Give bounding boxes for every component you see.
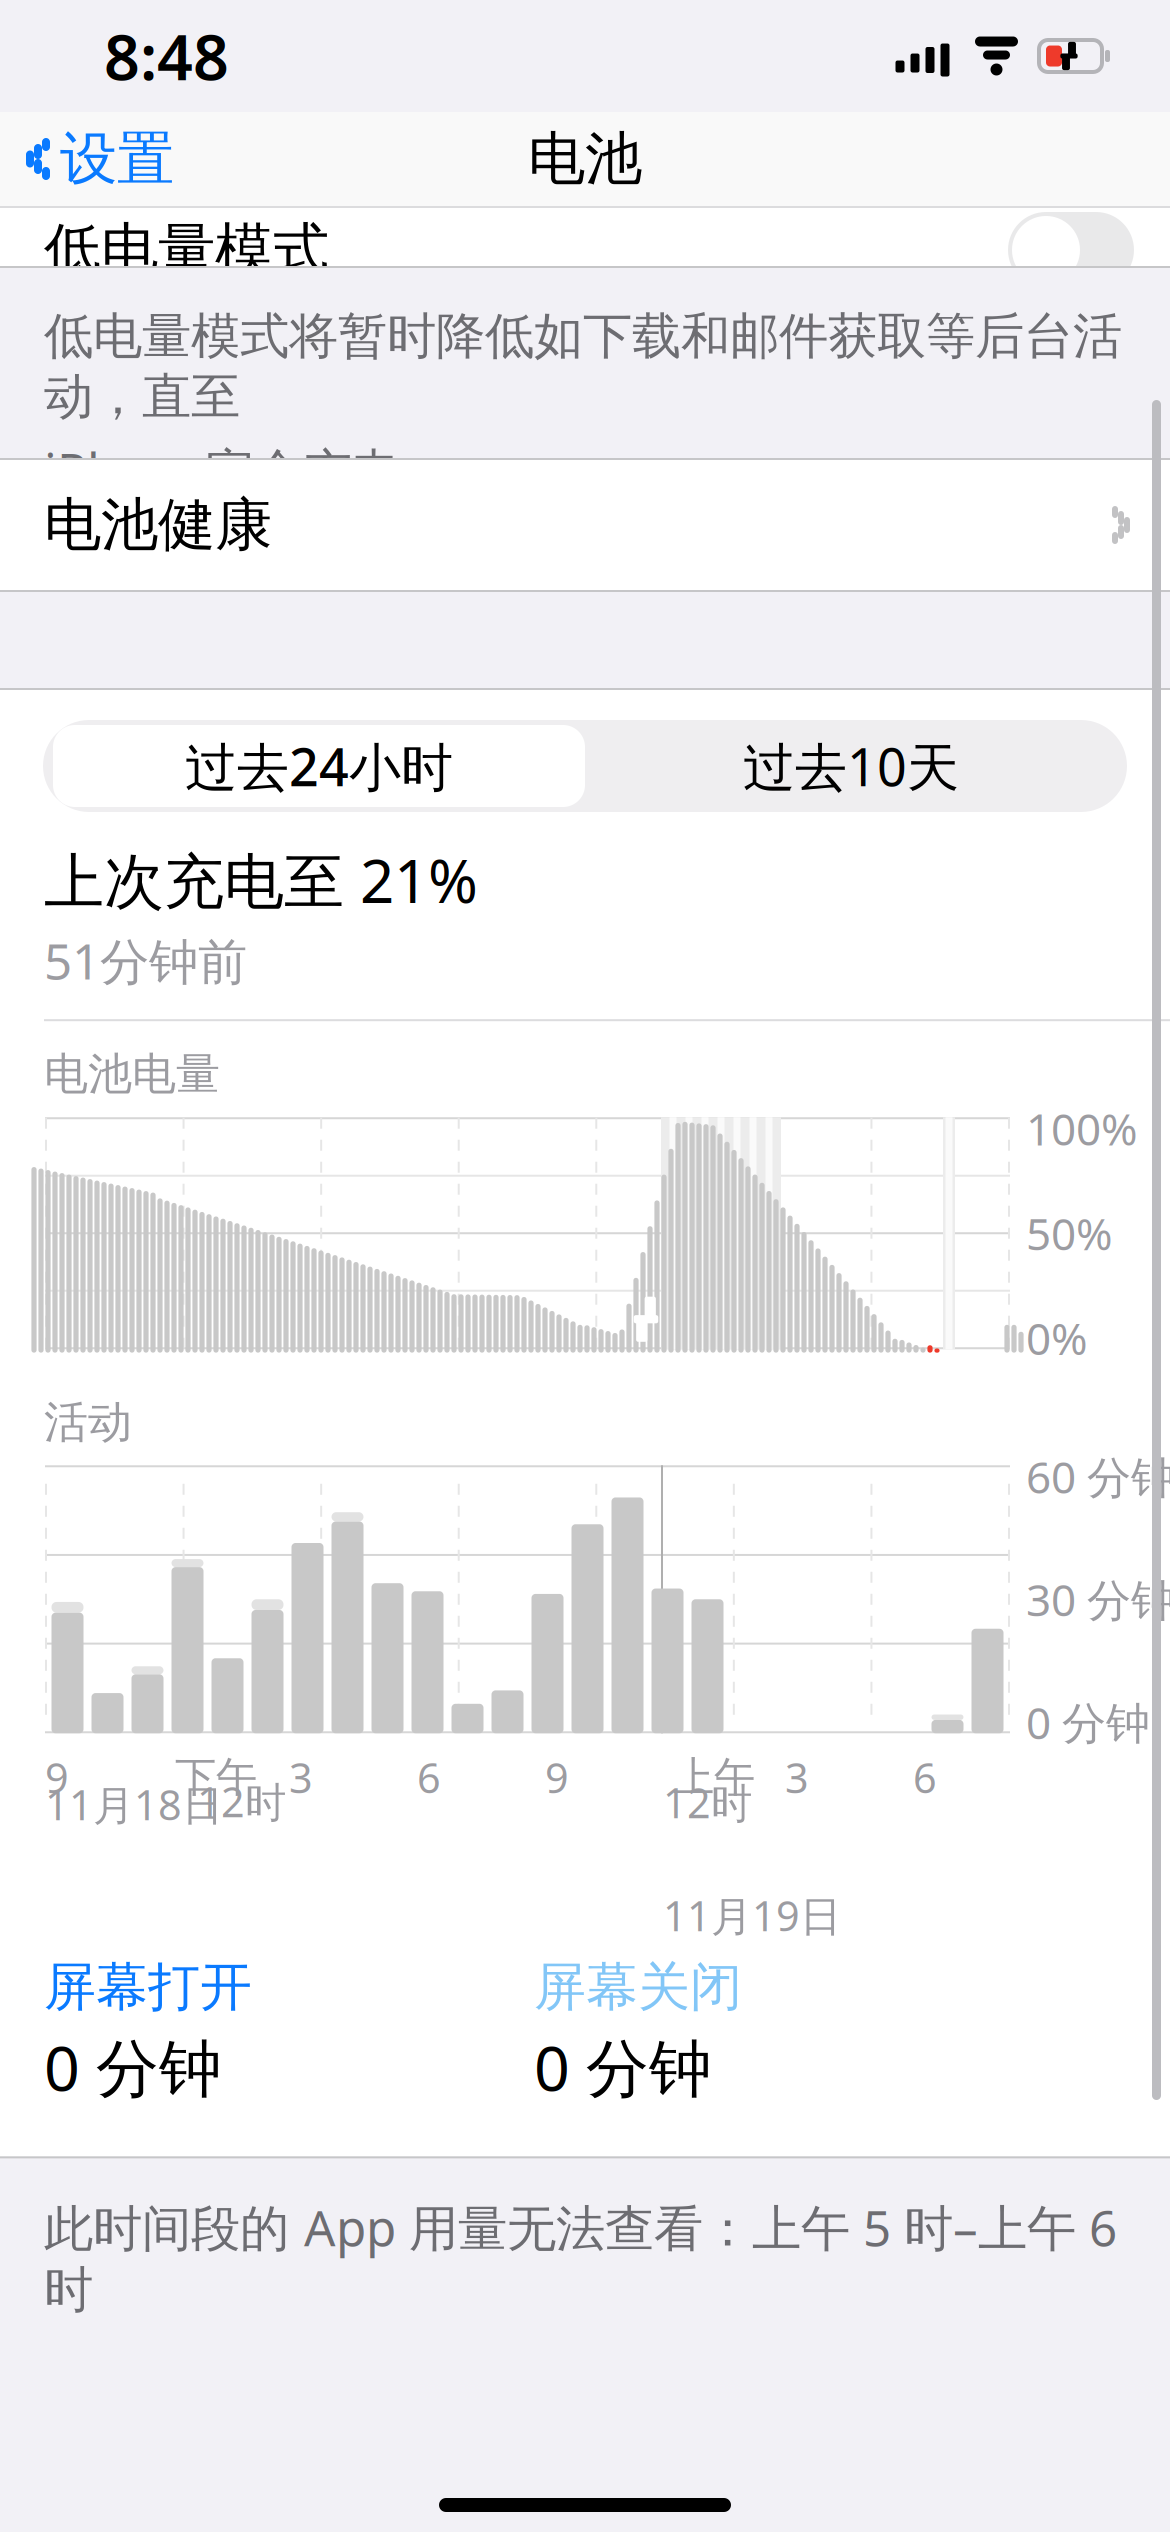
- staticText: 过去10天: [743, 731, 959, 801]
- staticText: 下午: [175, 1752, 257, 1803]
- staticText: 低电量模式: [44, 215, 329, 285]
- staticText: 6: [417, 1750, 441, 1805]
- staticText: 3: [289, 1750, 313, 1805]
- staticText: 上午: [673, 1752, 755, 1803]
- button[interactable]: 过去10天: [585, 725, 1117, 807]
- staticText: 设置: [60, 124, 174, 194]
- staticText: 屏幕打开: [44, 1955, 252, 2019]
- staticText: 活动: [44, 1395, 132, 1449]
- button[interactable]: 电池健康: [0, 460, 1170, 590]
- staticText: 6: [913, 1750, 937, 1805]
- staticText: 12时: [663, 1775, 752, 1830]
- staticText: 0 分钟: [534, 2025, 712, 2108]
- staticText: 9: [45, 1750, 69, 1805]
- staticText: 100%: [1026, 1099, 1138, 1158]
- staticText: 50%: [1026, 1204, 1113, 1262]
- staticText: 11月18日: [45, 1777, 223, 1832]
- button[interactable]: 低电量模式开关: [1008, 212, 1134, 288]
- staticText: 电池: [528, 124, 642, 194]
- staticText: 51分钟前: [44, 928, 247, 993]
- staticText: 屏幕关闭: [534, 1955, 742, 2019]
- staticText: 0 分钟: [44, 2025, 222, 2108]
- staticText: 11月19日: [663, 1888, 841, 1943]
- staticText: 0 分钟: [1026, 1693, 1150, 1751]
- staticText: 30 分钟: [1026, 1570, 1170, 1628]
- staticText: 60 分钟: [1026, 1447, 1170, 1506]
- staticText: iPhone完全充电。: [44, 437, 450, 503]
- staticText: 过去24小时: [185, 731, 453, 801]
- staticText: 3: [785, 1750, 809, 1805]
- staticText: 此时间段的 App 用量无法查看：上午 5 时–上午 6 时: [44, 2194, 1117, 2320]
- button[interactable]: 设置: [0, 112, 192, 206]
- staticText: 9: [545, 1750, 569, 1805]
- staticText: 12时: [197, 1774, 286, 1829]
- staticText: 电池电量: [44, 1047, 220, 1101]
- staticText: 低电量模式将暂时降低如下载和邮件获取等后台活动，直至: [44, 306, 1122, 427]
- staticText: 上次充电至 21%: [44, 840, 478, 920]
- staticText: 8:48: [104, 14, 229, 98]
- button[interactable]: 过去24小时: [53, 725, 585, 807]
- staticText: 电池健康: [44, 490, 272, 560]
- staticText: 0%: [1026, 1309, 1088, 1367]
